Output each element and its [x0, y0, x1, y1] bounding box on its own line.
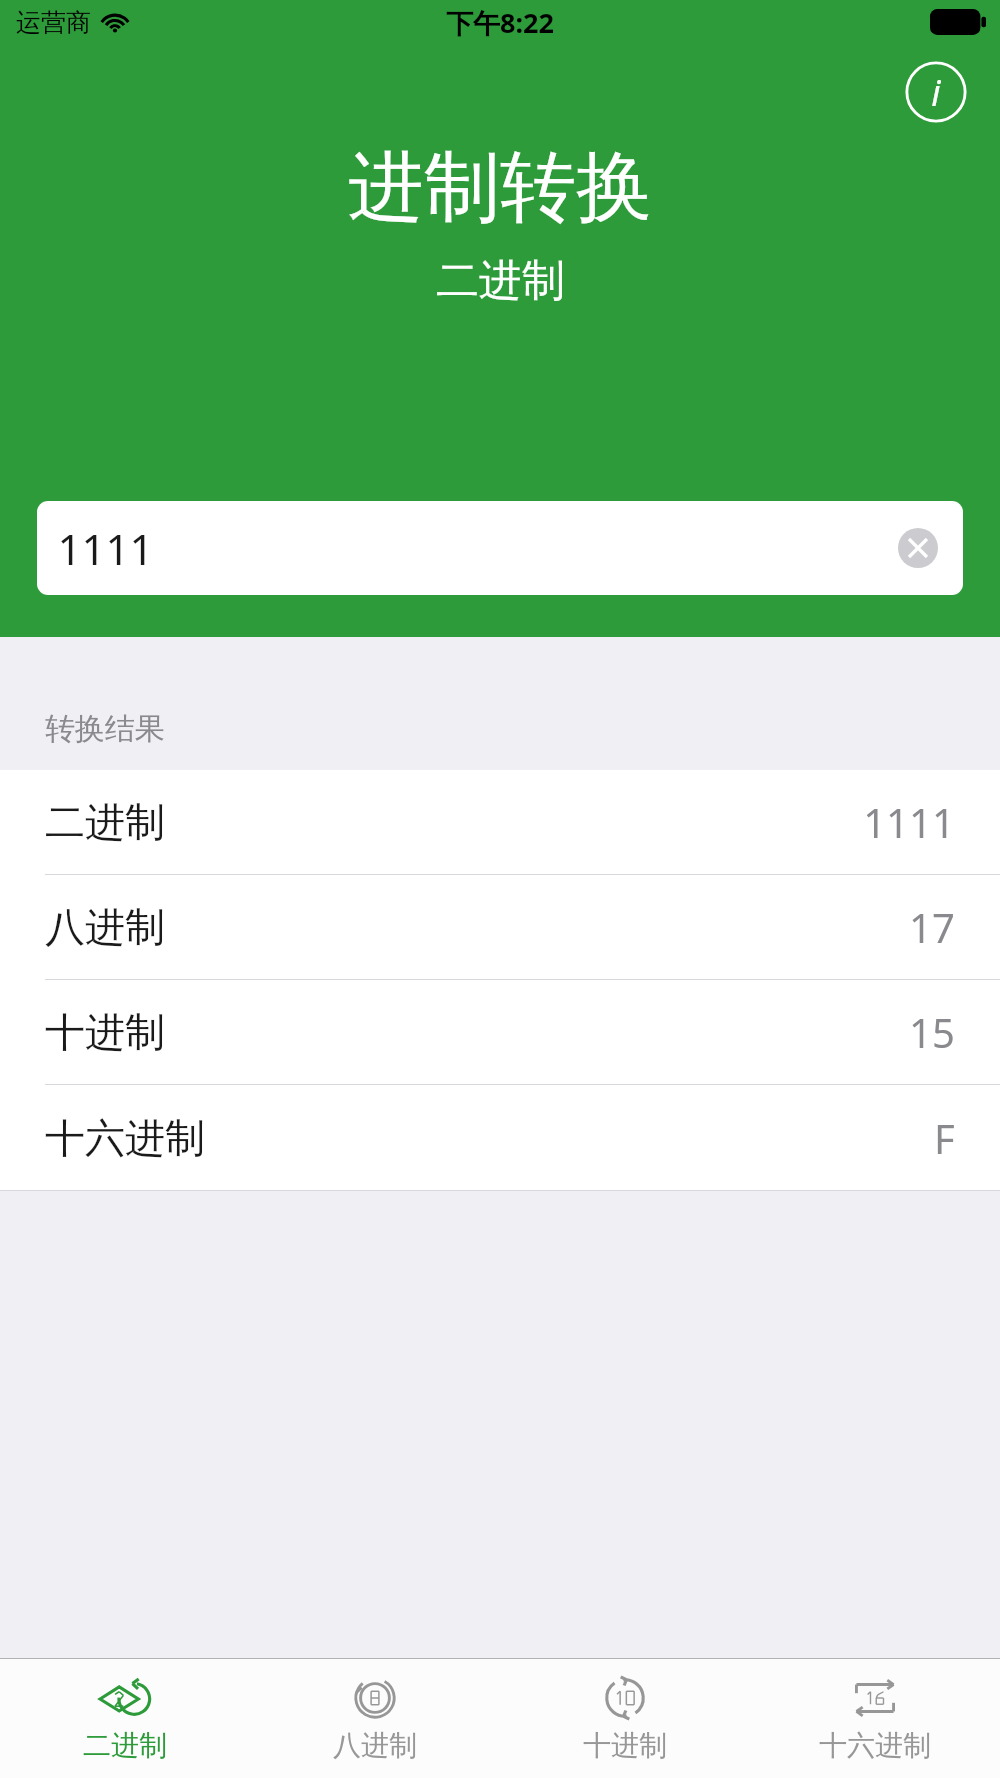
staticText: 十进制 — [45, 1007, 165, 1057]
button[interactable]: 十进制 — [0, 980, 1000, 1085]
staticText: 转换结果 — [45, 710, 165, 748]
staticText: 二进制 — [436, 254, 565, 308]
staticText: F — [934, 1111, 955, 1165]
button[interactable]: 二进制 — [0, 770, 1000, 875]
staticText: 1111 — [863, 795, 955, 849]
staticText: i — [931, 68, 941, 117]
staticText: 十六进制 — [819, 1728, 931, 1763]
staticText: 十进制 — [583, 1728, 667, 1763]
staticText: 1111 — [57, 520, 154, 577]
button[interactable]: 八进制 — [0, 875, 1000, 980]
button[interactable]: Info — [902, 58, 970, 126]
staticText: 八进制 — [45, 902, 165, 952]
staticText: 二进制 — [83, 1728, 167, 1763]
staticText: 二进制 — [45, 797, 165, 847]
staticText: 15 — [909, 1005, 955, 1059]
staticText: 十六进制 — [45, 1113, 205, 1163]
button[interactable]: 十进制 — [500, 1658, 750, 1778]
staticText: 下午8:22 — [446, 4, 554, 41]
button[interactable]: 1111 — [37, 501, 963, 595]
staticText: 17 — [909, 900, 955, 954]
button[interactable]: 八进制 — [250, 1658, 500, 1778]
staticText: 进制转换 — [348, 140, 652, 236]
staticText: 八进制 — [333, 1728, 417, 1763]
button[interactable]: 二进制 — [0, 1658, 250, 1778]
button[interactable]: 十六进制 — [0, 1085, 1000, 1190]
staticText: 运营商 — [16, 7, 91, 38]
button[interactable]: Clear — [895, 525, 941, 571]
button[interactable]: 十六进制 — [750, 1658, 1000, 1778]
